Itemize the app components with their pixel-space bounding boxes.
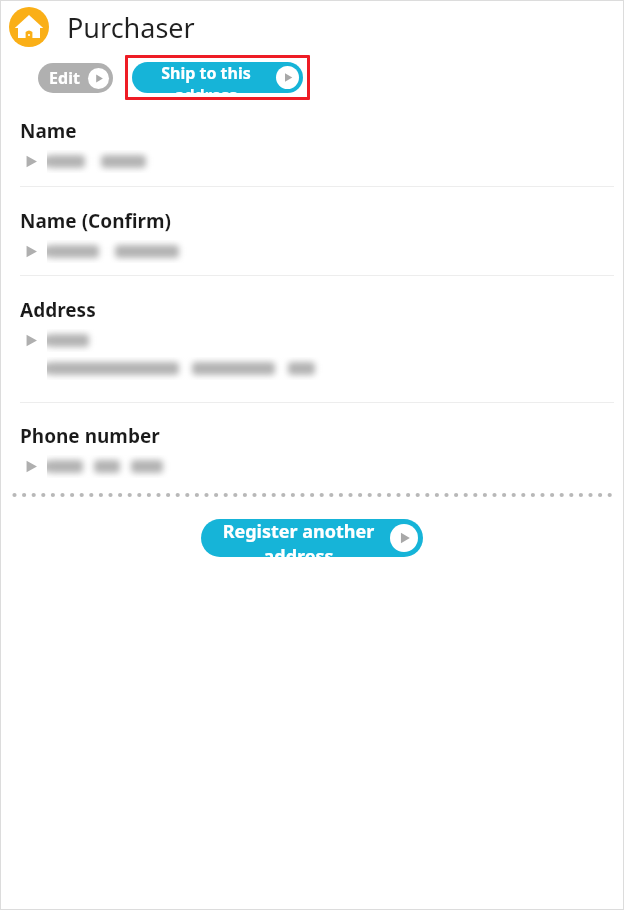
staticText: Name xyxy=(20,118,77,144)
button[interactable]: Ship to this address xyxy=(132,62,303,93)
staticText: Edit xyxy=(49,67,80,89)
button[interactable]: Register another address xyxy=(201,519,423,557)
staticText: Ship to this address xyxy=(136,62,276,93)
staticText: Name (Confirm) xyxy=(20,208,171,234)
staticText: Address xyxy=(20,297,96,323)
staticText: Phone number xyxy=(20,423,160,449)
staticText: Purchaser xyxy=(67,9,195,46)
button[interactable]: Edit xyxy=(38,63,113,93)
staticText: Register another address xyxy=(207,519,390,557)
